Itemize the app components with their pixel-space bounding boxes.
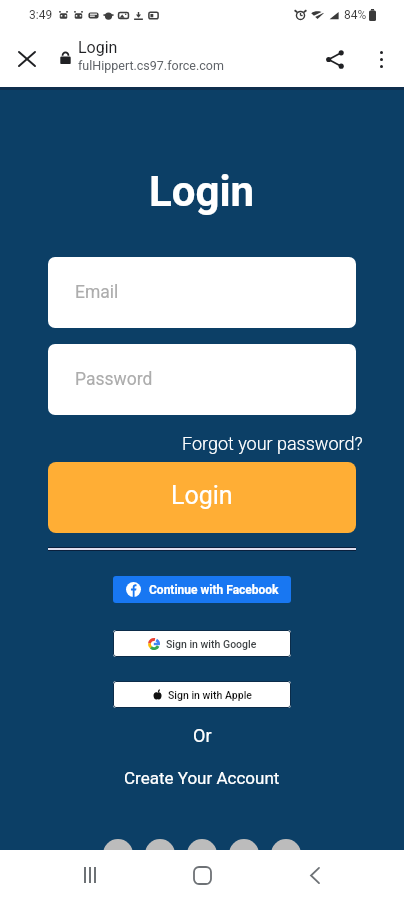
button[interactable]: Sign in with Google: [113, 630, 291, 657]
button[interactable]: Recents: [67, 852, 113, 898]
button[interactable]: More options: [362, 40, 400, 78]
button[interactable]: Social link: [229, 839, 259, 869]
button[interactable]: Create Your Account: [122, 766, 282, 790]
staticText: Password: [75, 369, 153, 390]
staticText: Or: [193, 725, 212, 746]
button[interactable]: Login: [48, 462, 356, 533]
button[interactable]: Email: [48, 257, 356, 328]
staticText: Sign in with Google: [166, 638, 257, 650]
staticText: fulHippert.cs97.force.com: [78, 58, 224, 73]
button[interactable]: Social link: [187, 839, 217, 869]
staticText: Sign in with Apple: [168, 689, 252, 701]
staticText: Login: [78, 38, 118, 57]
button[interactable]: Password: [48, 344, 356, 415]
button[interactable]: Social link: [145, 839, 175, 869]
button[interactable]: Home: [179, 852, 225, 898]
staticText: 3:49: [29, 8, 53, 22]
button[interactable]: Social link: [103, 839, 133, 869]
button[interactable]: Back: [292, 852, 338, 898]
staticText: Login: [171, 481, 233, 510]
staticText: 84%: [344, 8, 367, 22]
staticText: Continue with Facebook: [149, 583, 279, 597]
button[interactable]: Share: [316, 40, 354, 78]
button[interactable]: Sign in with Apple: [113, 681, 291, 708]
button[interactable]: Continue with Facebook: [113, 576, 291, 603]
button[interactable]: Forgot your password?: [180, 431, 365, 456]
staticText: Login: [149, 167, 255, 216]
staticText: Email: [75, 282, 119, 303]
button[interactable]: Social link: [271, 839, 301, 869]
button[interactable]: Close: [8, 40, 46, 78]
